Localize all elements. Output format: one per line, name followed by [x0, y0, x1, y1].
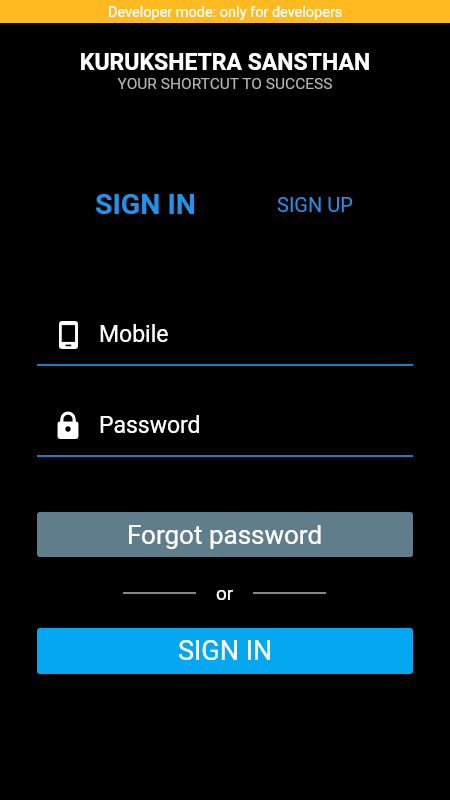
button[interactable]: SIGN UP: [277, 193, 353, 216]
staticText: Forgot password: [127, 520, 323, 550]
staticText: Developer mode: only for developers: [108, 4, 343, 21]
staticText: KURUKSHETRA SANSTHAN: [0, 49, 450, 76]
button[interactable]: SIGN IN: [37, 628, 413, 674]
staticText: or: [216, 582, 234, 604]
button[interactable]: Forgot password: [37, 512, 413, 557]
staticText: Mobile: [99, 321, 169, 348]
other: Password: [57, 412, 79, 439]
button[interactable]: Password: [37, 403, 413, 455]
staticText: SIGN IN: [95, 188, 196, 221]
other: Mobile number: [59, 321, 78, 349]
staticText: SIGN UP: [277, 193, 353, 216]
button[interactable]: SIGN IN: [95, 188, 196, 221]
staticText: Password: [99, 412, 201, 439]
staticText: YOUR SHORTCUT TO SUCCESS: [0, 75, 450, 93]
staticText: SIGN IN: [178, 635, 273, 667]
button[interactable]: Mobile number: [37, 313, 413, 364]
